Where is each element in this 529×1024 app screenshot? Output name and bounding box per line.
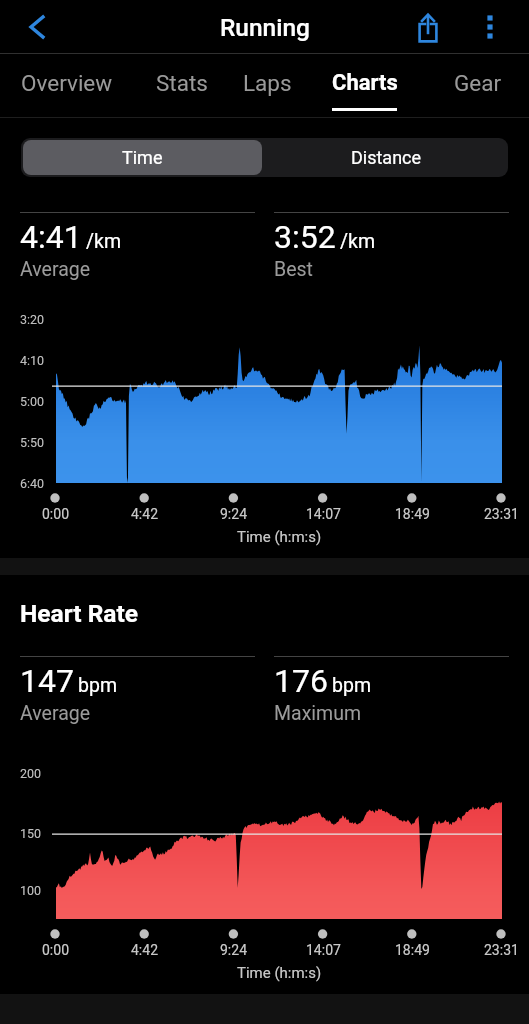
staticText: 3:52 (274, 218, 336, 256)
button[interactable]: Charts (317, 54, 412, 118)
staticText: 3:20 (20, 312, 45, 327)
button[interactable]: Distance (264, 138, 508, 177)
button[interactable]: Back (13, 0, 61, 54)
staticText: 6:40 (20, 476, 45, 491)
staticText: 176 (274, 662, 328, 700)
button[interactable]: Laps (230, 54, 305, 118)
staticText: 9:24 (220, 942, 247, 958)
staticText: 4:10 (20, 353, 45, 368)
staticText: Distance (351, 147, 422, 168)
staticText: 4:42 (131, 506, 158, 522)
staticText: 14:07 (306, 506, 341, 522)
staticText: 5:00 (20, 394, 45, 409)
staticText: Time (h:m:s) (237, 528, 322, 546)
staticText: bpm (78, 674, 117, 697)
staticText: 5:50 (20, 435, 45, 450)
staticText: Average (20, 258, 91, 281)
staticText: Charts (332, 70, 398, 96)
button[interactable]: Share (404, 0, 452, 54)
staticText: 9:24 (220, 506, 247, 522)
staticText: bpm (332, 674, 371, 697)
staticText: 4:41 (20, 218, 82, 256)
staticText: Best (274, 258, 313, 281)
staticText: 18:49 (395, 942, 430, 958)
staticText: Laps (243, 70, 292, 96)
staticText: Average (20, 702, 91, 725)
staticText: Running (220, 13, 310, 42)
staticText: Heart Rate (20, 599, 138, 628)
staticText: 14:07 (306, 942, 341, 958)
staticText: 100 (20, 883, 42, 898)
staticText: 23:31 (484, 942, 519, 958)
staticText: 18:49 (395, 506, 430, 522)
staticText: Time (h:m:s) (237, 964, 322, 982)
staticText: 0:00 (42, 942, 69, 958)
staticText: /km (340, 230, 376, 253)
staticText: Gear (454, 70, 502, 96)
button[interactable]: Time (23, 140, 262, 175)
staticText: 200 (20, 766, 42, 781)
staticText: Stats (156, 70, 208, 96)
staticText: 147 (20, 662, 74, 700)
staticText: 150 (20, 826, 42, 841)
staticText: Time (122, 147, 163, 168)
button[interactable]: Stats (143, 54, 220, 118)
staticText: /km (86, 230, 122, 253)
staticText: Maximum (274, 702, 361, 725)
button[interactable]: More options (466, 0, 514, 54)
staticText: 23:31 (484, 506, 519, 522)
staticText: 0:00 (42, 506, 69, 522)
button[interactable]: Gear (440, 54, 515, 118)
staticText: Overview (21, 70, 113, 96)
staticText: 4:42 (131, 942, 158, 958)
button[interactable]: Overview (7, 54, 127, 118)
